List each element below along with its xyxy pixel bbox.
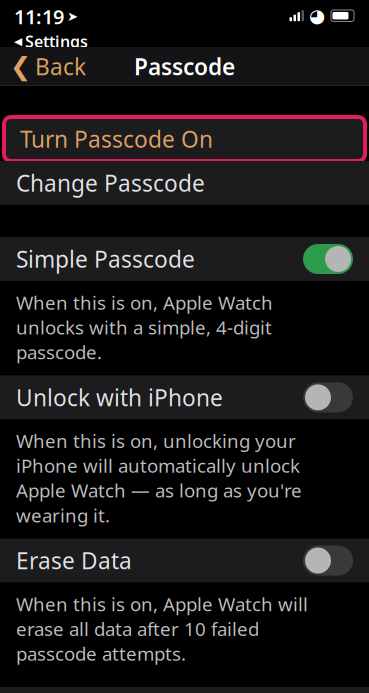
staticText: Unlock with iPhone <box>16 382 223 412</box>
staticText: Simple Passcode <box>16 244 195 274</box>
button[interactable]: Change Passcode <box>0 161 369 205</box>
staticText: When this is on, unlocking your iPhone w… <box>16 428 302 528</box>
staticText: Passcode <box>134 51 235 81</box>
staticText: 11:19 <box>14 3 64 30</box>
staticText: ❮ <box>10 52 31 81</box>
button[interactable]: On <box>303 244 353 274</box>
button[interactable]: Simple Passcode <box>0 237 369 281</box>
staticText: ◕ <box>309 5 325 26</box>
staticText: Back <box>35 51 86 81</box>
staticText: When this is on, Apple Watch will erase … <box>16 591 308 666</box>
button[interactable]: Turn Passcode On <box>4 117 365 161</box>
button[interactable]: Off <box>303 382 353 412</box>
staticText: Settings <box>25 31 88 52</box>
staticText: Change Passcode <box>16 168 205 198</box>
button[interactable]: ❮ <box>0 47 96 85</box>
button[interactable]: Off <box>303 545 353 575</box>
button[interactable]: Unlock with iPhone <box>0 375 369 419</box>
staticText: ◀ <box>14 35 22 47</box>
staticText: Turn Passcode On <box>20 124 213 154</box>
staticText: When this is on, Apple Watch unlocks wit… <box>16 290 273 364</box>
staticText: Erase Data <box>16 545 132 576</box>
staticText: ➤ <box>67 9 78 24</box>
button[interactable]: Erase Data <box>0 538 369 582</box>
